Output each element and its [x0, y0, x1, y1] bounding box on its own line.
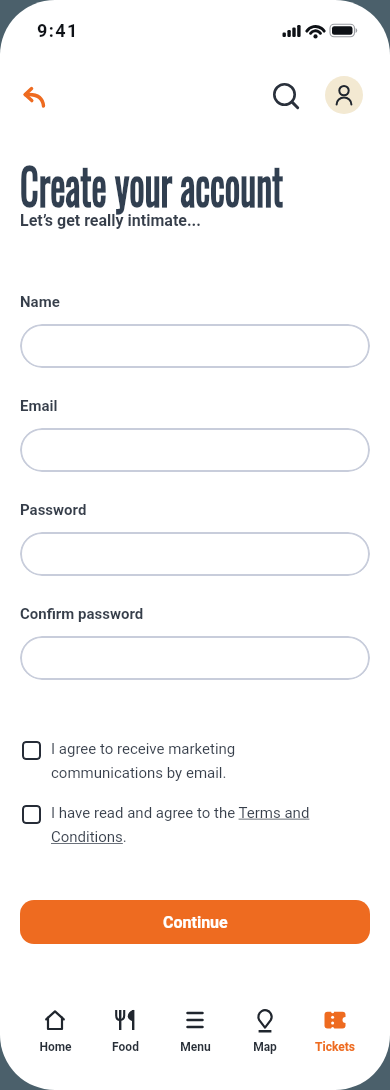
button[interactable] — [22, 805, 41, 824]
staticText: I agree to receive marketing communicati… — [51, 740, 236, 782]
staticText: Tickets — [315, 1040, 355, 1054]
staticText: Confirm password — [20, 605, 144, 623]
button[interactable]: Home — [20, 1008, 90, 1054]
staticText: Create your account — [20, 146, 284, 222]
button[interactable]: Continue — [20, 900, 370, 944]
button[interactable] — [22, 741, 41, 760]
staticText: Food — [112, 1040, 139, 1054]
staticText: Menu — [180, 1040, 211, 1054]
button[interactable]: I have read and agree to the Terms and C… — [51, 804, 310, 846]
button[interactable]: Tickets — [300, 1008, 370, 1054]
button[interactable]: Food — [90, 1008, 160, 1054]
button[interactable] — [271, 81, 301, 111]
staticText: Email — [20, 397, 58, 415]
staticText: Map — [253, 1040, 277, 1054]
button[interactable] — [20, 636, 370, 680]
button[interactable]: Map — [230, 1008, 300, 1054]
staticText: 9:41 — [37, 20, 79, 41]
staticText: Name — [20, 293, 60, 311]
staticText: Let’s get really intimate... — [20, 211, 201, 230]
staticText: Home — [39, 1040, 72, 1054]
button[interactable]: Menu — [160, 1008, 230, 1054]
button[interactable] — [20, 324, 370, 368]
button[interactable] — [20, 532, 370, 576]
staticText: Continue — [163, 913, 228, 932]
staticText: Password — [20, 501, 87, 519]
button[interactable] — [325, 76, 363, 114]
button[interactable] — [20, 428, 370, 472]
button[interactable] — [21, 84, 47, 110]
